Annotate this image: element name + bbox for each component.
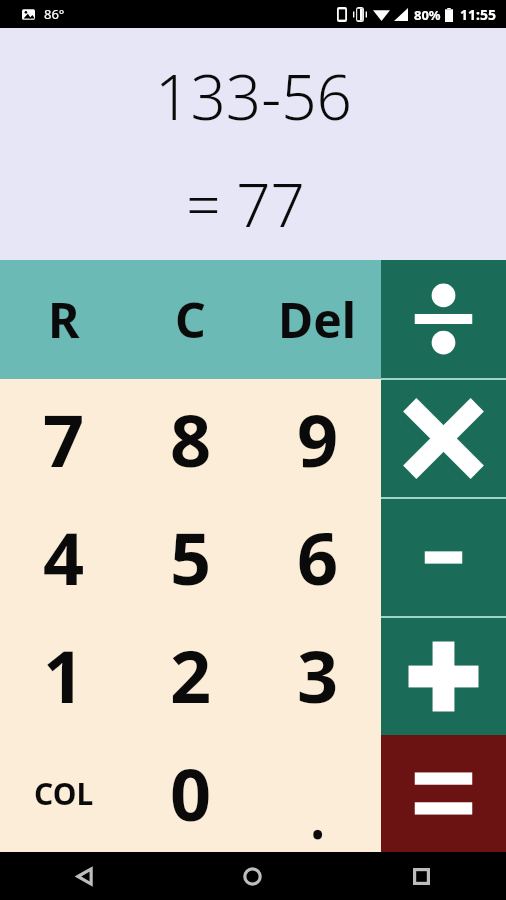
button[interactable]: Multiply [381, 380, 506, 497]
button[interactable]: R [0, 260, 127, 379]
staticText: 2 [170, 626, 212, 724]
staticText: COL [34, 773, 94, 814]
button[interactable]: 0 [127, 734, 254, 852]
staticText: 3 [297, 626, 339, 724]
button[interactable]: Equals [381, 735, 506, 852]
staticText: . [308, 762, 328, 860]
staticText: 133-56 [155, 54, 352, 138]
button[interactable]: Recents [337, 852, 506, 900]
staticText: 9 [297, 390, 339, 488]
staticText: Del [278, 287, 357, 352]
button[interactable]: Minus [381, 499, 506, 616]
staticText: 80% [414, 6, 441, 24]
button[interactable]: COL [0, 734, 127, 852]
staticText: = 77 [186, 163, 305, 245]
button[interactable]: Back [0, 852, 168, 900]
button[interactable]: 2 [127, 616, 254, 734]
staticText: 11:55 [460, 5, 496, 24]
button[interactable]: 3 [254, 616, 381, 734]
button[interactable]: 9 [254, 379, 381, 498]
button[interactable]: Divide [381, 260, 506, 378]
button[interactable]: 6 [254, 498, 381, 616]
staticText: 4 [43, 508, 85, 606]
button[interactable]: C [127, 260, 254, 379]
staticText: 5 [170, 508, 212, 606]
button[interactable]: 4 [0, 498, 127, 616]
staticText: 8 [170, 390, 212, 488]
button[interactable]: Home [168, 852, 337, 900]
button[interactable]: 5 [127, 498, 254, 616]
staticText: C [175, 287, 206, 352]
button[interactable]: 1 [0, 616, 127, 734]
button[interactable]: . [254, 734, 381, 852]
button[interactable]: 8 [127, 379, 254, 498]
staticText: 86° [44, 5, 65, 23]
staticText: R [48, 287, 80, 352]
staticText: 0 [170, 744, 212, 842]
button[interactable]: Del [254, 260, 381, 379]
staticText: 1 [43, 626, 85, 724]
button[interactable]: 7 [0, 379, 127, 498]
button[interactable]: Plus [381, 618, 506, 735]
staticText: 6 [297, 508, 339, 606]
staticText: 7 [43, 390, 85, 488]
